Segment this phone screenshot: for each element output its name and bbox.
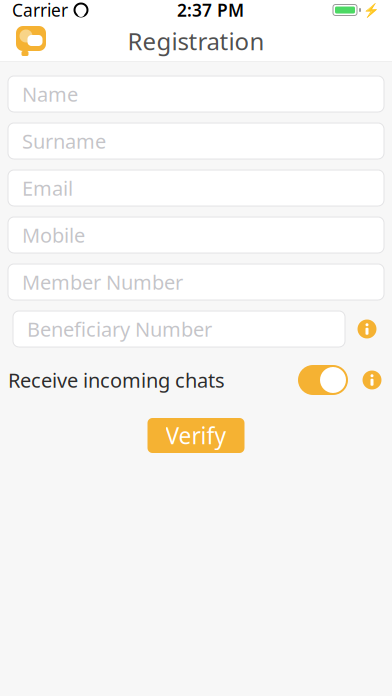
- staticText: Carrier: [12, 0, 68, 21]
- button[interactable]: Receive incoming chats: [298, 365, 348, 395]
- staticText: Email: [22, 175, 73, 201]
- staticText: Beneficiary Number: [27, 316, 212, 342]
- staticText: Receive incoming chats: [8, 367, 225, 393]
- button[interactable]: Chats: [14, 25, 48, 57]
- staticText: Registration: [127, 25, 264, 57]
- staticText: 2:37 PM: [177, 0, 244, 21]
- staticText: Name: [22, 81, 78, 107]
- staticText: Verify: [165, 420, 226, 450]
- button[interactable]: Verify: [147, 418, 244, 453]
- staticText: Mobile: [22, 222, 85, 248]
- staticText: ⚡: [363, 2, 380, 18]
- button[interactable]: More information: [360, 368, 384, 392]
- staticText: Surname: [22, 128, 106, 154]
- staticText: Member Number: [22, 269, 183, 295]
- button[interactable]: More information: [355, 317, 379, 341]
